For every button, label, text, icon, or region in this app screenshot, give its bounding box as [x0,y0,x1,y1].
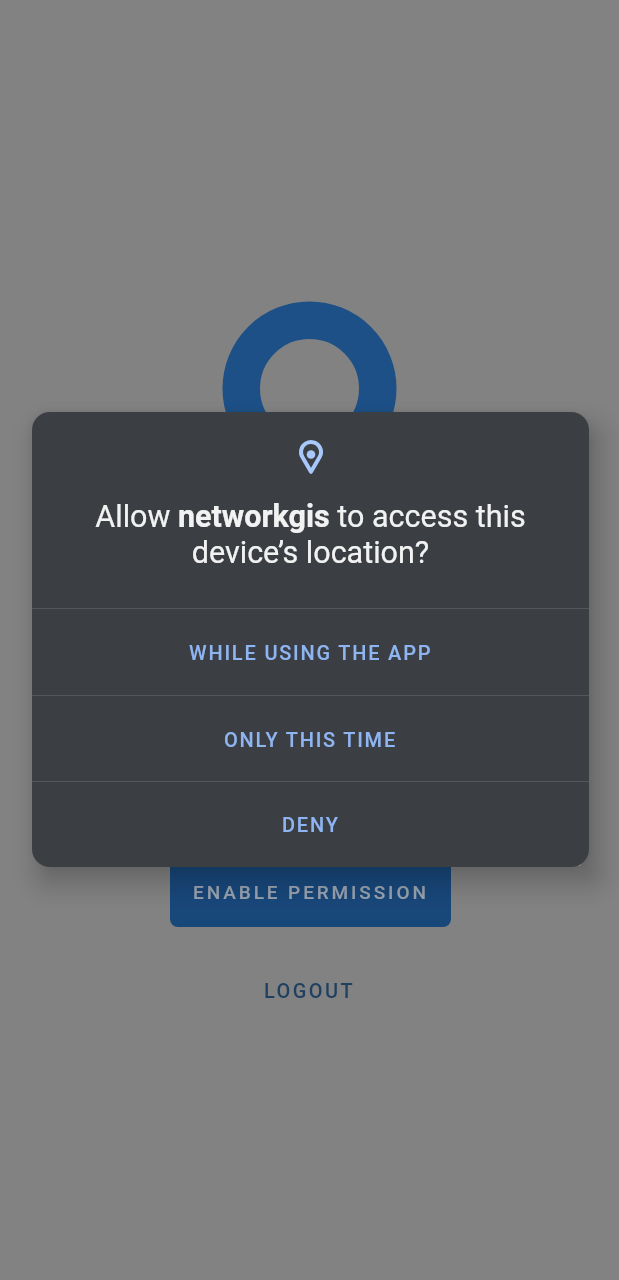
staticText: DENY [282,813,340,836]
button[interactable]: ENABLE PERMISSION [170,853,451,927]
button[interactable]: WHILE USING THE APP [32,609,589,695]
button[interactable]: ONLY THIS TIME [32,696,589,782]
staticText: ENABLE PERMISSION [193,881,429,903]
staticText: LOGOUT [264,979,356,1002]
staticText: Allow networkgis to access this device’s… [32,499,589,570]
staticText: WHILE USING THE APP [189,641,433,664]
button[interactable]: DENY [32,782,589,867]
staticText: ONLY THIS TIME [224,728,398,751]
button[interactable]: LOGOUT [244,966,376,1014]
